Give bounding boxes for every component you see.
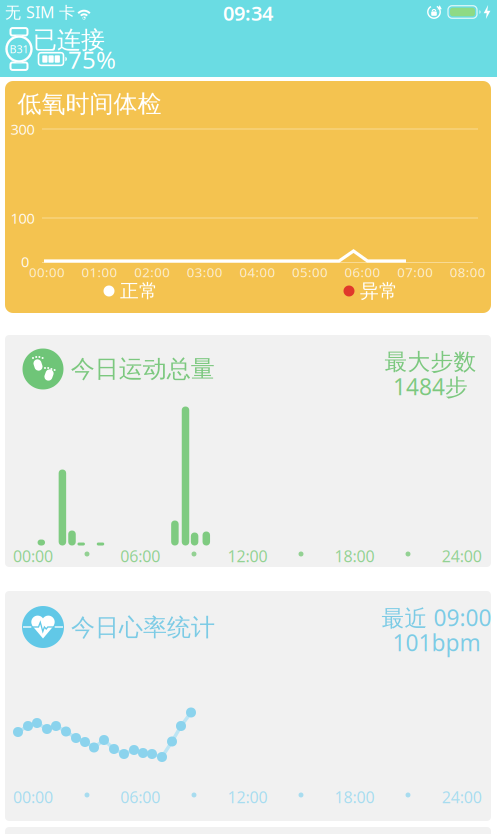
staticText: 75% (68, 44, 116, 75)
staticText: 今日运动总量 (71, 354, 215, 384)
staticText: 00:00 (29, 263, 65, 281)
staticText: 异常 (360, 279, 398, 302)
staticText: 06:00 (120, 786, 160, 808)
staticText: 06:00 (120, 545, 160, 567)
staticText: 06:00 (345, 263, 381, 281)
staticText: 0 (21, 252, 29, 271)
button[interactable]: 今日心率统计 (5, 591, 491, 821)
staticText: 已连接 (33, 25, 105, 55)
staticText: 1484步 (393, 371, 468, 401)
staticText: 无 SIM 卡 (5, 1, 75, 23)
staticText: 08:00 (450, 263, 486, 281)
staticText: 最近 09:00 (381, 602, 491, 632)
staticText: B31 (9, 42, 28, 56)
staticText: 24:00 (442, 786, 482, 808)
staticText: 12:00 (227, 545, 267, 567)
staticText: 100 (10, 208, 34, 228)
staticText: 04:00 (239, 263, 275, 281)
staticText: 09:34 (223, 0, 273, 26)
staticText: 正常 (120, 279, 158, 302)
staticText: 02:00 (134, 263, 170, 281)
staticText: 101bpm (392, 627, 480, 657)
staticText: 最大步数 (384, 348, 476, 376)
staticText: 300 (10, 119, 34, 139)
staticText: 12:00 (227, 786, 267, 808)
button[interactable]: 今日运动总量 (5, 335, 491, 567)
staticText: 今日心率统计 (71, 613, 215, 642)
button[interactable]: 低氧时间体检 (5, 81, 491, 313)
staticText: 03:00 (187, 263, 223, 281)
staticText: 低氧时间体检 (18, 89, 162, 119)
staticText: 18:00 (335, 786, 375, 808)
button[interactable]: 已连接的手表 B31，电量 75% (0, 30, 497, 77)
staticText: 05:00 (292, 263, 328, 281)
staticText: 07:00 (397, 263, 433, 281)
staticText: 01:00 (82, 263, 118, 281)
staticText: 00:00 (13, 545, 53, 567)
staticText: 24:00 (442, 545, 482, 567)
staticText: 18:00 (335, 545, 375, 567)
staticText: 00:00 (13, 786, 53, 808)
